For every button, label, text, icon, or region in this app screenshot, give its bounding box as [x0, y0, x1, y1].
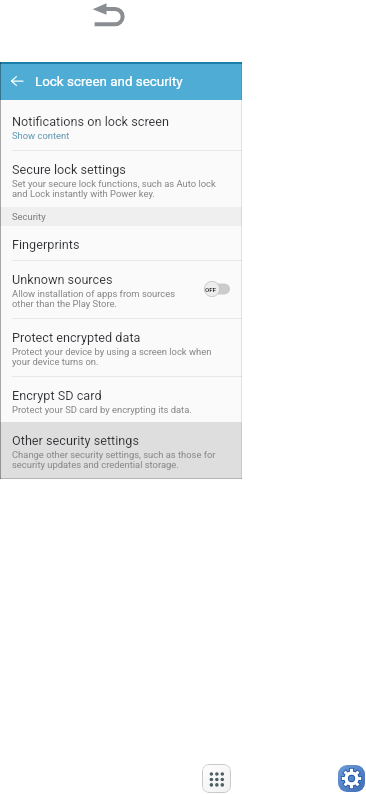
staticText: OFF	[205, 286, 217, 293]
staticText: Lock screen and security	[35, 74, 183, 90]
staticText: Show content	[12, 130, 70, 141]
button[interactable]: Unknown sources	[0, 261, 242, 318]
button[interactable]: Encrypt SD card	[0, 377, 242, 422]
staticText: Protect your device by using a screen lo…	[12, 346, 230, 368]
staticText: Fingerprints	[12, 237, 80, 252]
button[interactable]: Fingerprints	[0, 226, 242, 260]
button[interactable]: Settings	[338, 765, 365, 792]
button[interactable]: Protect encrypted data	[0, 319, 242, 376]
staticText: Secure lock settings	[12, 162, 126, 177]
staticText: Protect your SD card by encrypting its d…	[12, 404, 192, 415]
staticText: Set your secure lock functions, such as …	[12, 178, 230, 200]
staticText: Protect encrypted data	[12, 330, 141, 345]
button[interactable]: Back	[92, 2, 126, 28]
staticText: Allow installation of apps from sources …	[12, 288, 194, 310]
button[interactable]: Secure lock settings	[0, 151, 242, 207]
button[interactable]: Unknown sources, off	[204, 281, 230, 297]
staticText: Security	[12, 211, 46, 222]
button[interactable]: Apps	[202, 764, 231, 793]
staticText: Unknown sources	[12, 272, 113, 287]
staticText: Change other security settings, such as …	[12, 449, 230, 471]
staticText: Notifications on lock screen	[12, 114, 170, 129]
button[interactable]: Navigate up	[5, 62, 29, 100]
staticText: Other security settings	[12, 433, 139, 448]
staticText: Encrypt SD card	[12, 388, 102, 403]
button[interactable]: Notifications on lock screen	[0, 100, 242, 150]
button[interactable]: Other security settings	[0, 422, 242, 479]
